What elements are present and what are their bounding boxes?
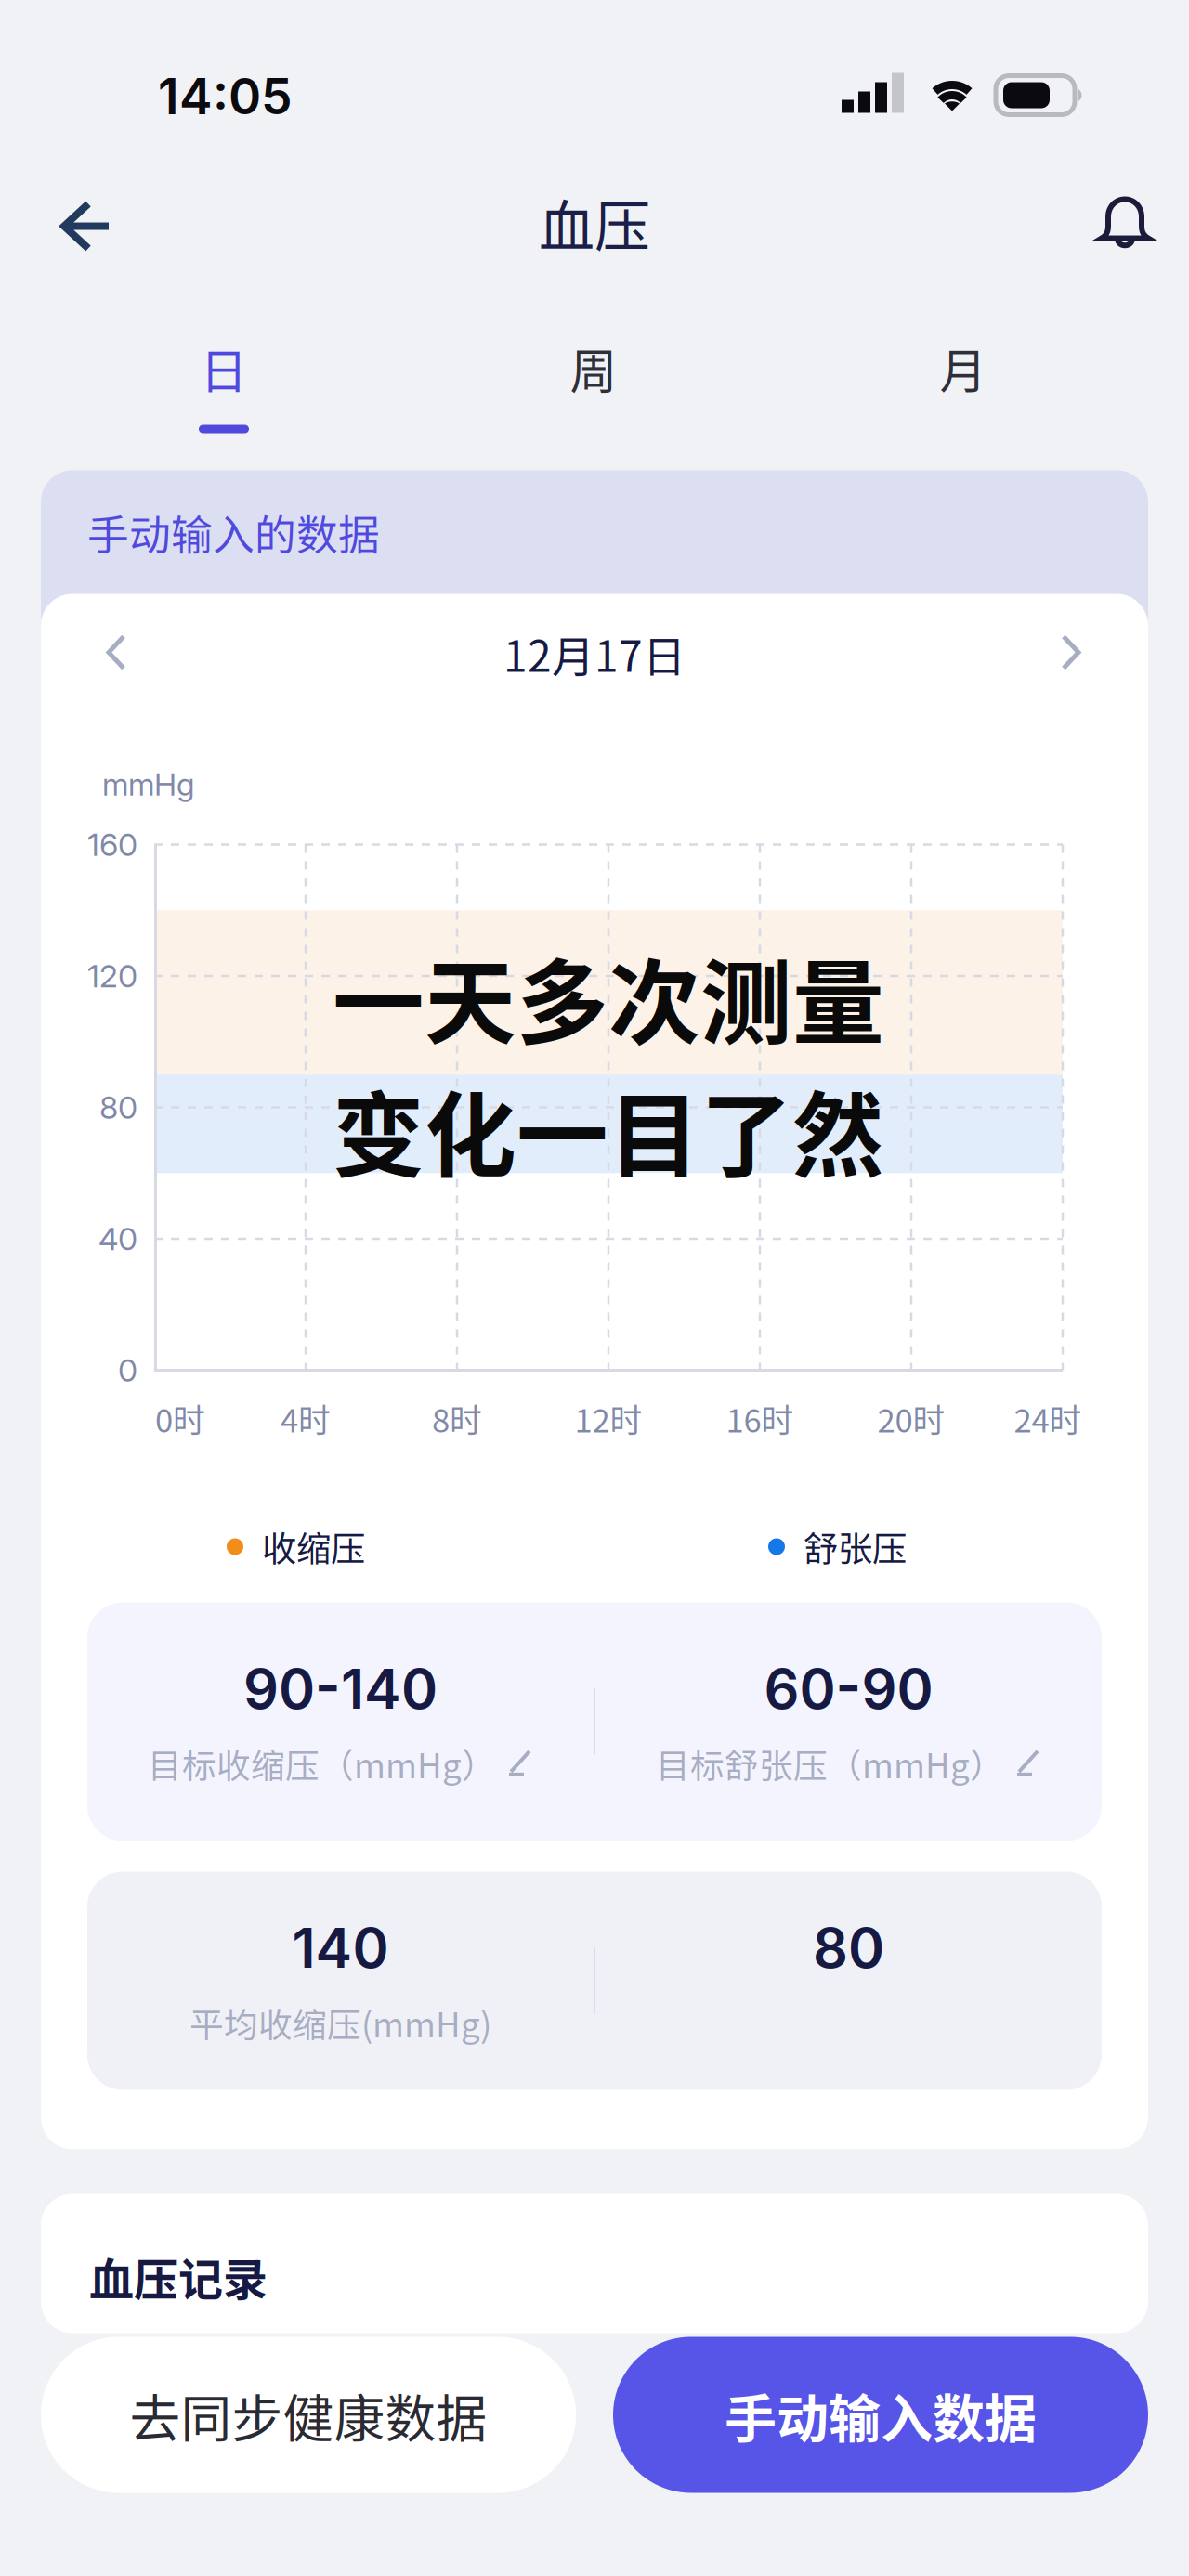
staticText: 血压记录 — [89, 2244, 268, 2309]
staticText: 16时 — [726, 1395, 794, 1442]
staticText: 12月17日 — [503, 622, 686, 684]
staticText: 14:05 — [158, 66, 293, 126]
staticText: 12时 — [575, 1395, 642, 1442]
staticText: mmHg — [102, 765, 194, 803]
button[interactable]: 前一天 — [89, 625, 145, 681]
staticText: 0 — [118, 1351, 137, 1389]
staticText: 手动输入数据 — [725, 2377, 1037, 2453]
staticText: 一天多次测量 变化一目了然 — [333, 930, 884, 1195]
staticText: 平均收缩压(mmHg) — [189, 1998, 491, 2047]
staticText: 月 — [940, 334, 987, 402]
staticText: 4时 — [281, 1395, 331, 1442]
staticText: 90-140 — [243, 1655, 438, 1722]
staticText: 40 — [98, 1220, 137, 1258]
staticText: 周 — [570, 334, 617, 402]
staticText: 目标舒张压（mmHg） — [656, 1739, 1004, 1788]
staticText: 手动输入的数据 — [87, 502, 380, 562]
staticText: 20时 — [877, 1395, 945, 1442]
staticText: 0时 — [155, 1395, 205, 1442]
staticText: 60-90 — [764, 1655, 933, 1722]
staticText: 去同步健康数据 — [130, 2378, 487, 2452]
button[interactable]: 手动输入数据 — [613, 2337, 1148, 2493]
button[interactable]: 后一天 — [1044, 625, 1100, 681]
staticText: 日 — [200, 334, 248, 402]
staticText: 80 — [813, 1914, 884, 1981]
staticText: 160 — [87, 825, 137, 864]
button[interactable]: 通知 — [0, 128, 97, 224]
staticText: 血压 — [539, 182, 650, 263]
staticText: 80 — [99, 1088, 137, 1126]
staticText: 24时 — [1014, 1395, 1082, 1442]
staticText: 舒张压 — [804, 1522, 907, 1572]
staticText: 目标收缩压（mmHg） — [148, 1739, 496, 1788]
staticText: 120 — [87, 957, 137, 995]
staticText: 8时 — [432, 1395, 482, 1442]
button[interactable]: 返回 — [0, 128, 97, 224]
button[interactable]: 去同步健康数据 — [41, 2337, 576, 2493]
staticText: 140 — [292, 1914, 389, 1981]
staticText: 收缩压 — [262, 1522, 365, 1572]
